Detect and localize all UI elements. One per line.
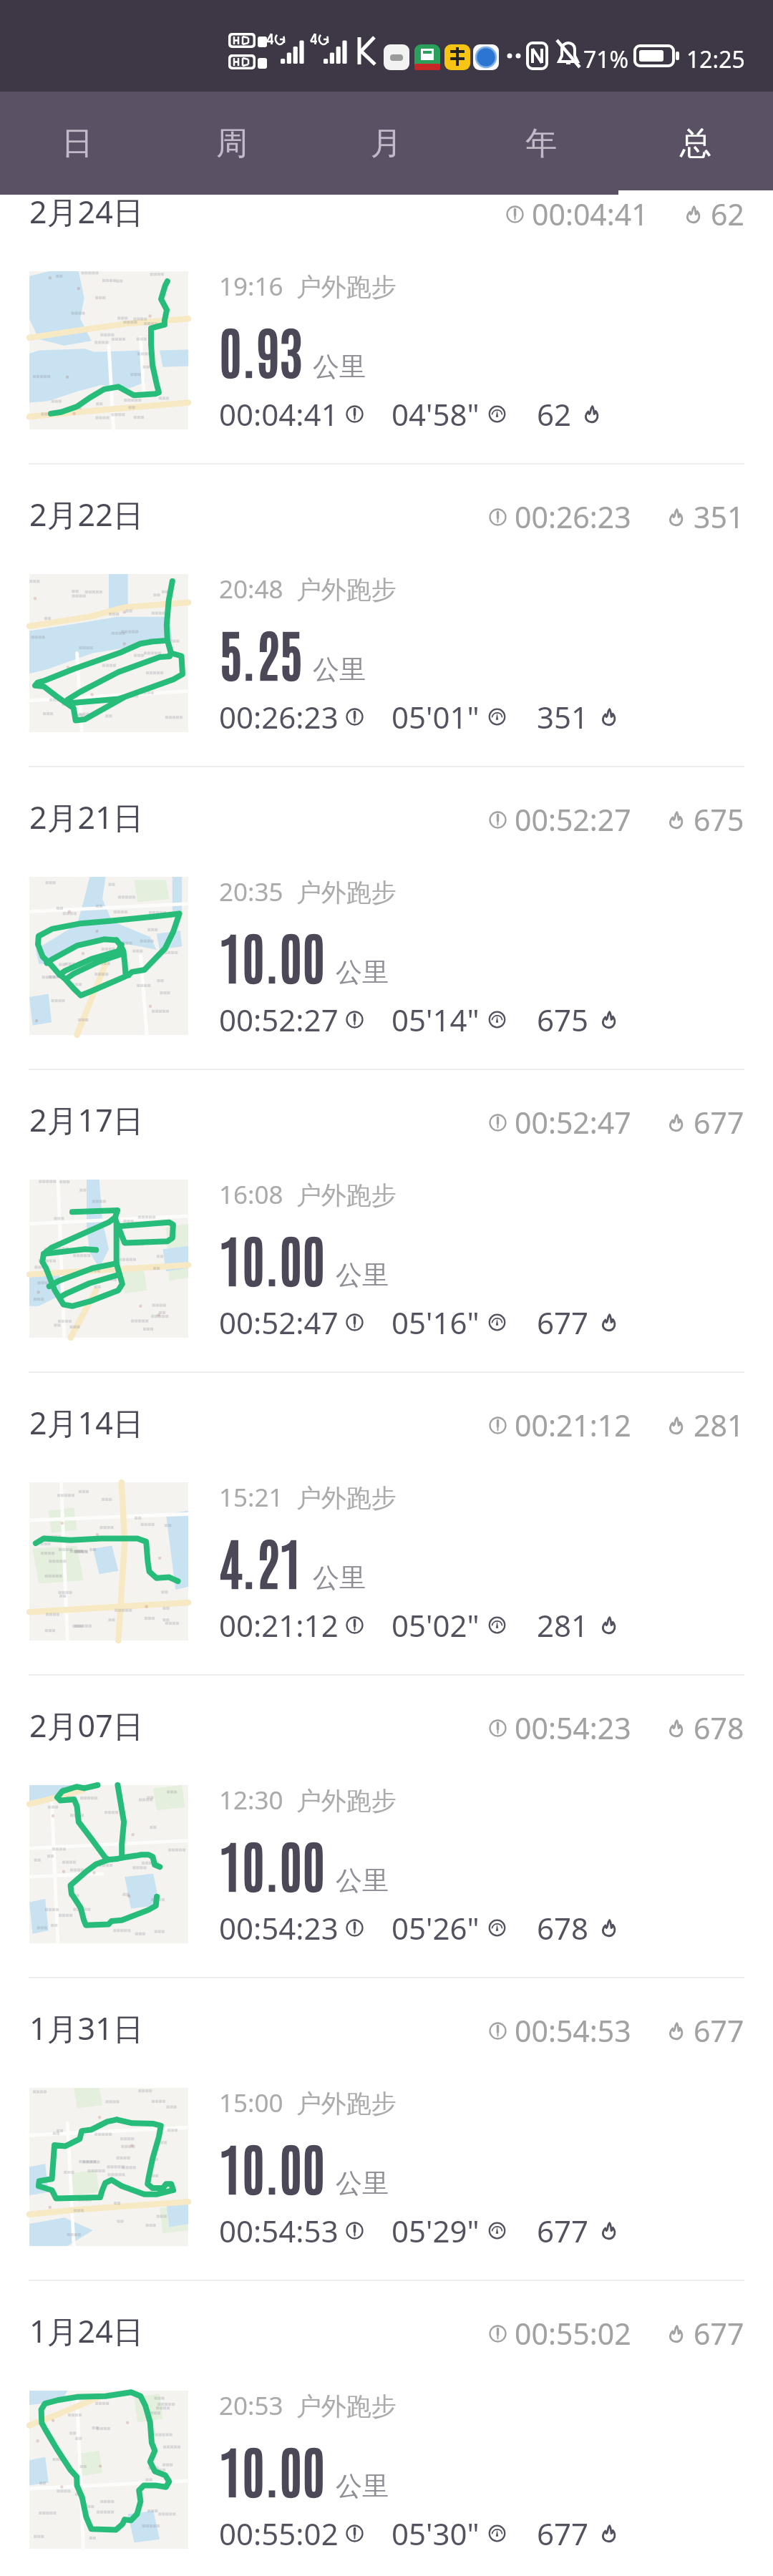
staticText: 678 — [694, 1708, 744, 1748]
button[interactable]: 2月14日 — [0, 1373, 773, 1676]
staticText: 00:55:02 — [219, 2513, 339, 2554]
staticText: 71% — [583, 44, 629, 75]
other: Calories — [666, 810, 686, 830]
other: Duration — [345, 2221, 364, 2240]
staticText: 351 — [694, 497, 744, 537]
other: Pace — [487, 2524, 507, 2543]
other: Pace — [487, 1918, 507, 1938]
staticText: 周 — [216, 124, 248, 163]
other: Duration — [488, 810, 507, 830]
staticText: 10.00 — [219, 1222, 326, 1293]
other: Pace — [487, 2221, 507, 2240]
button[interactable]: 2月07日 — [0, 1676, 773, 1978]
staticText: 62 — [537, 394, 572, 434]
button[interactable]: 日 — [0, 92, 155, 195]
staticText: 00:21:12 — [515, 1405, 631, 1445]
button[interactable]: 周 — [155, 92, 309, 195]
staticText: 04'58" — [392, 394, 480, 434]
other: Calories — [666, 2324, 686, 2343]
other: Duration — [488, 1416, 507, 1435]
other: Calories — [599, 1010, 618, 1029]
staticText: 2月24日 — [29, 190, 144, 233]
staticText: 677 — [694, 2313, 744, 2353]
button[interactable]: 年 — [464, 92, 618, 195]
staticText: 00:26:23 — [219, 696, 339, 737]
staticText: 00:54:23 — [219, 1907, 339, 1948]
button[interactable]: 月 — [309, 92, 464, 195]
staticText: 5.25 — [219, 616, 303, 688]
other: Duration — [345, 404, 364, 424]
staticText: 00:52:47 — [515, 1102, 631, 1142]
staticText: 678 — [537, 1907, 589, 1948]
staticText: 00:52:27 — [515, 799, 631, 840]
other: Calories — [666, 1719, 686, 1738]
other: Duration — [488, 507, 507, 527]
staticText: 2月21日 — [29, 796, 144, 838]
staticText: 20:35 户外跑步 — [219, 875, 397, 909]
staticText: 公里 — [336, 2469, 389, 2503]
other: Calories — [582, 404, 601, 424]
other: Calories — [599, 1615, 618, 1635]
staticText: 月 — [371, 124, 402, 163]
staticText: 05'14" — [392, 999, 480, 1040]
staticText: 2月17日 — [29, 1099, 144, 1141]
staticText: 00:21:12 — [219, 1605, 339, 1646]
staticText: 351 — [537, 696, 589, 737]
staticText: 05'26" — [392, 1907, 480, 1948]
other: Duration — [345, 1615, 364, 1635]
staticText: 05'02" — [392, 1605, 480, 1646]
button[interactable]: 总 — [618, 92, 773, 195]
staticText: 12:25 — [686, 44, 745, 75]
other: Calories — [666, 507, 686, 527]
button[interactable]: 1月24日 — [0, 2281, 773, 2576]
other: Calories — [666, 2021, 686, 2041]
staticText: 1月31日 — [29, 2007, 144, 2049]
staticText: 2月22日 — [29, 493, 144, 535]
staticText: 公里 — [313, 350, 366, 384]
staticText: 00:54:23 — [515, 1708, 631, 1748]
staticText: 62 — [711, 194, 744, 234]
staticText: 675 — [694, 799, 744, 840]
staticText: 公里 — [313, 653, 366, 686]
staticText: 281 — [694, 1405, 744, 1445]
other: Pace — [487, 1313, 507, 1332]
staticText: 10.00 — [219, 919, 326, 991]
staticText: 677 — [537, 2210, 589, 2251]
button[interactable]: 2月22日 — [0, 465, 773, 767]
button[interactable]: 1月31日 — [0, 1978, 773, 2281]
button[interactable]: 2月24日 — [0, 162, 773, 465]
staticText: 677 — [694, 1102, 744, 1142]
other: Calories — [666, 1416, 686, 1435]
other: Pace — [487, 1010, 507, 1029]
staticText: 00:54:53 — [219, 2210, 339, 2251]
other: Pace — [487, 404, 507, 424]
staticText: 677 — [537, 2513, 589, 2554]
other: Duration — [345, 1918, 364, 1938]
staticText: 20:48 户外跑步 — [219, 572, 397, 606]
other: Calories — [599, 1918, 618, 1938]
other: Duration — [345, 707, 364, 726]
staticText: 19:16 户外跑步 — [219, 269, 397, 303]
staticText: 1月24日 — [29, 2310, 144, 2352]
staticText: 10.00 — [219, 2433, 326, 2504]
staticText: 00:52:47 — [219, 1302, 339, 1343]
other: Calories — [599, 707, 618, 726]
staticText: 00:54:53 — [515, 2011, 631, 2051]
staticText: 20:53 户外跑步 — [219, 2388, 397, 2423]
other: Calories — [666, 1113, 686, 1132]
other: Duration — [345, 1010, 364, 1029]
staticText: 日 — [62, 124, 93, 163]
staticText: 677 — [537, 1302, 589, 1343]
staticText: 10.00 — [219, 2130, 326, 2202]
staticText: 公里 — [313, 1561, 366, 1595]
other: Duration — [488, 1719, 507, 1738]
button[interactable]: 2月17日 — [0, 1070, 773, 1373]
other: Duration — [345, 2524, 364, 2543]
staticText: 00:55:02 — [515, 2313, 631, 2353]
staticText: 281 — [537, 1605, 589, 1646]
button[interactable]: 2月21日 — [0, 767, 773, 1070]
other: Duration — [345, 1313, 364, 1332]
staticText: 05'16" — [392, 1302, 480, 1343]
staticText: 年 — [525, 124, 557, 163]
staticText: 总 — [680, 124, 711, 163]
